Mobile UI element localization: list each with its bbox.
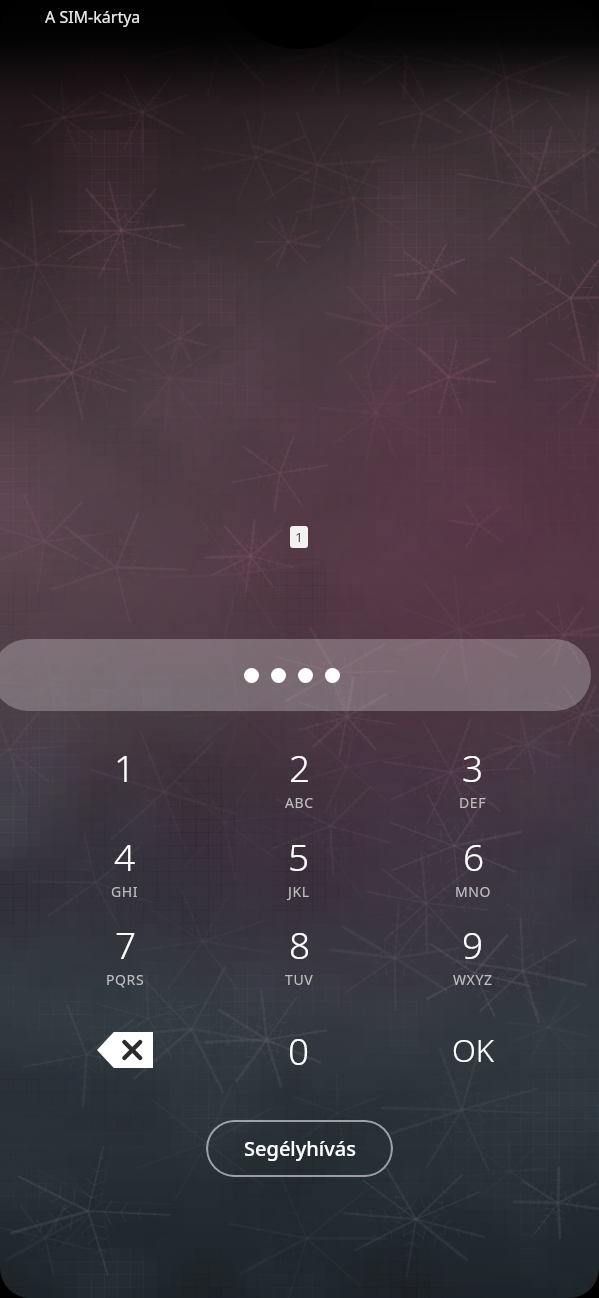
staticText: 4 [114, 831, 136, 881]
staticText: WXYZ [453, 970, 493, 989]
staticText: GHI [111, 882, 139, 901]
button[interactable]: 4 [38, 831, 212, 917]
button[interactable]: 1 [38, 742, 212, 828]
staticText: A SIM-kártya [45, 6, 141, 28]
staticText: 9 [462, 919, 484, 969]
staticText: 1 [295, 528, 303, 546]
button[interactable]: 9 [386, 919, 560, 1005]
button[interactable]: Backspace [38, 1008, 212, 1092]
button[interactable] [0, 639, 591, 711]
staticText: OK [452, 1029, 495, 1071]
staticText: 1 [114, 742, 136, 792]
button[interactable]: 8 [212, 919, 386, 1005]
button[interactable]: 5 [212, 831, 386, 917]
staticText: JKL [288, 882, 310, 901]
staticText: 6 [463, 831, 485, 881]
button[interactable]: Segélyhívás [206, 1120, 393, 1177]
staticText: TUV [285, 970, 314, 989]
staticText: ABC [285, 793, 314, 812]
button[interactable]: 6 [386, 831, 560, 917]
staticText: 5 [288, 831, 310, 881]
staticText: 2 [289, 742, 311, 792]
button[interactable]: 2 [212, 742, 386, 828]
button[interactable]: 0 [212, 1008, 386, 1092]
staticText: 7 [115, 919, 137, 969]
staticText: MNO [455, 882, 492, 901]
staticText: 0 [288, 1025, 310, 1075]
staticText: 3 [462, 742, 484, 792]
staticText: Segélyhívás [244, 1135, 356, 1162]
staticText: PQRS [106, 970, 145, 989]
button[interactable]: OK [386, 1008, 560, 1092]
staticText: 8 [289, 919, 311, 969]
button[interactable]: 3 [386, 742, 560, 828]
button[interactable]: 7 [38, 919, 212, 1005]
staticText: DEF [459, 793, 487, 812]
